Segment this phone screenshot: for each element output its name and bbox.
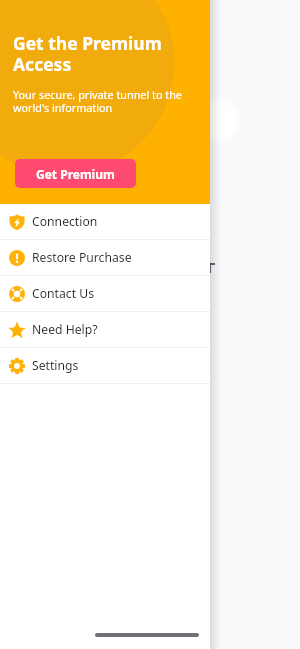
button[interactable]: Settings: [0, 348, 210, 384]
staticText: Get Premium: [36, 166, 115, 182]
button[interactable]: Restore Purchase: [0, 240, 210, 276]
staticText: Contact Us: [32, 285, 95, 302]
button[interactable]: Connection: [0, 204, 210, 240]
staticText: Get the Premium Access: [13, 31, 193, 76]
button[interactable]: Contact Us: [0, 276, 210, 312]
staticText: Restore Purchase: [32, 249, 132, 266]
button[interactable]: Get Premium: [15, 159, 136, 188]
staticText: Connection: [32, 213, 98, 230]
staticText: Your secure, private tunnel to the world…: [13, 87, 193, 115]
staticText: Need Help?: [32, 321, 98, 338]
button[interactable]: Need Help?: [0, 312, 210, 348]
button[interactable]: Close navigation drawer: [210, 0, 300, 649]
staticText: Settings: [32, 357, 79, 374]
